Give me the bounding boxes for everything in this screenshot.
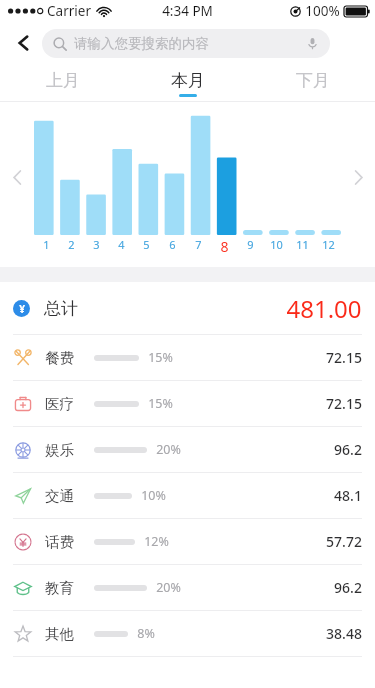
staticText: 20% — [156, 441, 181, 458]
staticText: 医疗 — [45, 395, 74, 413]
button[interactable]: 娱乐 — [0, 427, 375, 472]
staticText: 12% — [144, 533, 169, 550]
staticText: 1 — [43, 237, 50, 252]
staticText: 11 — [296, 237, 309, 252]
staticText: 8 — [220, 237, 229, 256]
staticText: 15% — [148, 395, 173, 412]
staticText: 10 — [270, 237, 283, 252]
button[interactable]: 交通 — [0, 473, 375, 518]
staticText: 96.2 — [334, 440, 362, 459]
staticText: 4 — [118, 237, 125, 252]
button[interactable]: ¥ — [0, 282, 375, 334]
staticText: 57.72 — [326, 532, 362, 551]
staticText: 72.15 — [326, 348, 362, 367]
staticText: 481.00 — [286, 292, 362, 325]
staticText: Carrier — [47, 2, 91, 20]
staticText: 12 — [322, 237, 335, 252]
staticText: 其他 — [45, 625, 74, 643]
staticText: 下月 — [296, 70, 330, 91]
staticText: 请输入您要搜索的内容 — [74, 35, 209, 52]
staticText: 15% — [148, 349, 173, 366]
button[interactable]: Back — [6, 25, 42, 61]
staticText: 5 — [143, 237, 150, 252]
staticText: 总计 — [44, 298, 78, 319]
staticText: 2 — [68, 237, 75, 252]
staticText: 48.1 — [334, 486, 362, 505]
staticText: 100% — [305, 2, 340, 20]
button[interactable]: Previous — [4, 164, 30, 190]
staticText: 本月 — [171, 70, 205, 91]
button[interactable]: 医疗 — [0, 381, 375, 426]
button[interactable]: 话费 — [0, 519, 375, 564]
button[interactable]: 本月 — [125, 64, 250, 102]
staticText: 4:34 PM — [162, 2, 213, 20]
staticText: 7 — [195, 237, 202, 252]
button[interactable]: 教育 — [0, 565, 375, 610]
staticText: 10% — [141, 487, 166, 504]
button[interactable]: 下月 — [250, 64, 375, 102]
button[interactable]: 餐费 — [0, 335, 375, 380]
button[interactable]: 请输入您要搜索的内容 — [42, 29, 330, 58]
button[interactable]: 其他 — [0, 611, 375, 656]
staticText: 3 — [93, 237, 100, 252]
staticText: 20% — [156, 579, 181, 596]
button[interactable]: Next — [345, 164, 371, 190]
staticText: 教育 — [45, 579, 74, 597]
button[interactable]: 上月 — [0, 64, 125, 102]
staticText: 8% — [137, 625, 155, 642]
staticText: 交通 — [45, 487, 74, 505]
staticText: 38.48 — [326, 624, 362, 643]
staticText: 9 — [247, 237, 254, 252]
staticText: 96.2 — [334, 578, 362, 597]
staticText: 娱乐 — [45, 441, 74, 459]
staticText: ¥ — [19, 302, 25, 316]
staticText: 餐费 — [45, 349, 74, 367]
staticText: 72.15 — [326, 394, 362, 413]
staticText: 6 — [169, 237, 176, 252]
staticText: 话费 — [45, 533, 74, 551]
staticText: 上月 — [46, 70, 80, 91]
